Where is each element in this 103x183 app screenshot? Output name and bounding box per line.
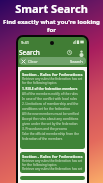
- button[interactable]: Account: [77, 48, 86, 57]
- staticText: 3. Procedures and the process: [22, 127, 68, 131]
- staticText: Retrieve any rules the federation has se…: [22, 77, 83, 85]
- staticText: 9:41: [21, 40, 29, 45]
- staticText: Smart Search: [15, 1, 88, 16]
- staticText: Clear: [28, 59, 38, 64]
- staticText: Find exactly what you're looking for: [0, 18, 103, 34]
- button[interactable]: Section - Rules for Federations: [20, 70, 85, 149]
- button[interactable]: History: [65, 48, 74, 57]
- staticText: Take the official membership from the fe…: [22, 132, 83, 141]
- staticText: All of the members notify of the rules: [22, 92, 78, 96]
- staticText: 2. Limitations of membership and the con…: [22, 102, 83, 111]
- staticText: All the new members must be verified: [22, 112, 79, 116]
- staticText: Accept the rules about any conditions gi…: [22, 117, 83, 126]
- staticText: Section - Rules for Federations: [22, 154, 83, 159]
- staticText: Search: [70, 59, 83, 64]
- staticText: Search: [19, 48, 40, 57]
- button[interactable]: Section - Rules for Federations: [20, 152, 85, 173]
- staticText: 1. RULE of the federation members: [22, 87, 78, 91]
- staticText: Retrieve any rules the federation has se…: [22, 159, 83, 167]
- staticText: Retrieve any rules the federation has se…: [22, 167, 83, 171]
- button[interactable]: [20, 176, 85, 180]
- staticText: Section - Rules for Federations: [22, 72, 83, 77]
- button[interactable]: Clear: [19, 57, 86, 65]
- staticText: In case of the conflict with local rules: [22, 97, 78, 101]
